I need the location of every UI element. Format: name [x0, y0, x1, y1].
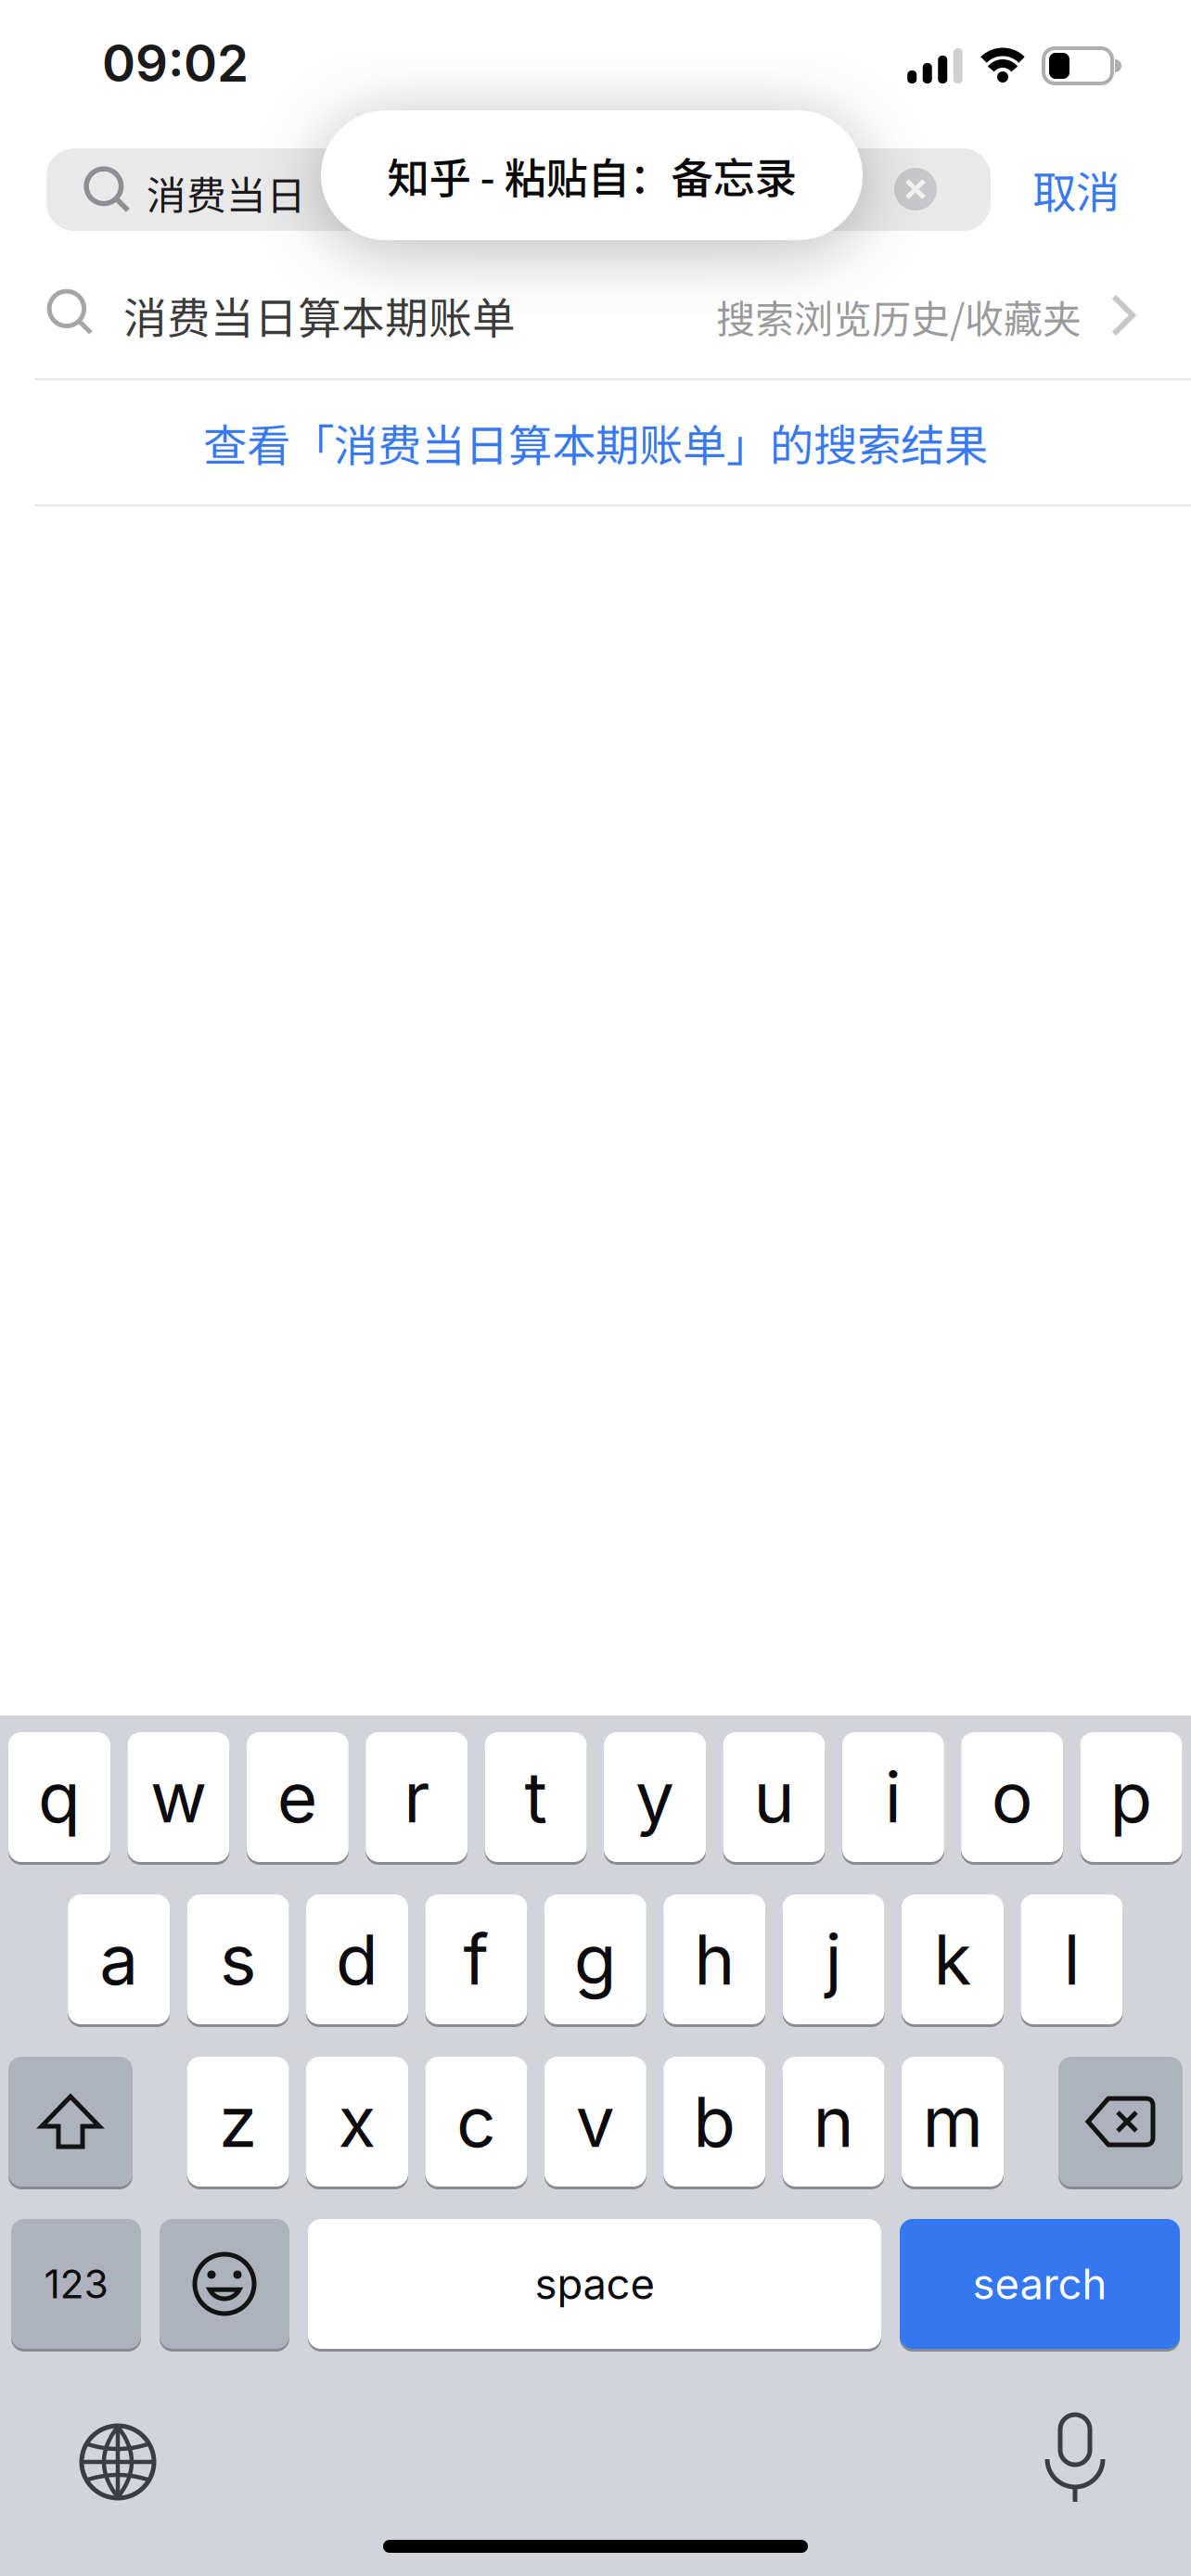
staticText: n	[813, 2080, 854, 2163]
staticText: 消费当日	[147, 164, 306, 221]
staticText: b	[693, 2080, 736, 2163]
staticText: u	[754, 1755, 794, 1839]
button[interactable]: s	[187, 1893, 289, 2026]
staticText: space	[535, 2258, 654, 2309]
staticText: 查看「消费当日算本期账单」的搜索结果	[203, 411, 988, 474]
staticText: search	[973, 2258, 1107, 2309]
button[interactable]: e	[247, 1730, 349, 1864]
button[interactable]: j	[782, 1893, 885, 2026]
button[interactable]: space	[308, 2217, 881, 2351]
staticText: l	[1063, 1917, 1080, 2001]
staticText: 知乎 - 粘贴自：备忘录	[387, 145, 796, 206]
button[interactable]: b	[663, 2055, 765, 2188]
button[interactable]: u	[723, 1730, 825, 1864]
button[interactable]: v	[544, 2055, 646, 2188]
button[interactable]: r	[366, 1730, 468, 1864]
staticText: w	[150, 1755, 207, 1839]
staticText: t	[525, 1755, 547, 1839]
staticText: p	[1110, 1755, 1153, 1839]
staticText: 09:02	[102, 32, 249, 94]
button[interactable]: Delete	[1058, 2055, 1183, 2188]
button[interactable]: Next keyboard	[82, 2426, 154, 2498]
button[interactable]: Shift	[8, 2055, 133, 2188]
button[interactable]: 查看「消费当日算本期账单」的搜索结果	[0, 380, 1191, 504]
button[interactable]: w	[127, 1730, 229, 1864]
button[interactable]: l	[1021, 1893, 1123, 2026]
button[interactable]: p	[1080, 1730, 1182, 1864]
staticText: f	[463, 1917, 489, 2001]
button[interactable]: 消费当日算本期账单	[0, 231, 1191, 379]
staticText: j	[825, 1917, 842, 2001]
staticText: i	[885, 1755, 901, 1839]
button[interactable]: t	[485, 1730, 587, 1864]
button[interactable]: x	[306, 2055, 408, 2188]
button[interactable]: search	[900, 2217, 1180, 2351]
button[interactable]: d	[306, 1893, 408, 2026]
button[interactable]: z	[187, 2055, 289, 2188]
button[interactable]: i	[842, 1730, 944, 1864]
button[interactable]: k	[902, 1893, 1004, 2026]
staticText: k	[934, 1917, 972, 2001]
button[interactable]: 123	[11, 2217, 141, 2351]
staticText: g	[574, 1917, 617, 2001]
button[interactable]: n	[782, 2055, 885, 2188]
staticText: s	[220, 1917, 256, 2001]
button[interactable]: 知乎 - 粘贴自：备忘录	[321, 110, 863, 240]
button[interactable]: q	[8, 1730, 110, 1864]
button[interactable]: o	[961, 1730, 1063, 1864]
staticText: z	[219, 2080, 257, 2163]
button[interactable]: f	[425, 1893, 527, 2026]
button[interactable]: Emoji	[160, 2217, 289, 2351]
button[interactable]: g	[544, 1893, 646, 2026]
button[interactable]: c	[425, 2055, 527, 2188]
staticText: r	[404, 1755, 430, 1839]
staticText: 搜索浏览历史/收藏夹	[716, 288, 1082, 345]
button[interactable]: 取消	[1032, 157, 1120, 221]
staticText: c	[456, 2080, 496, 2163]
button[interactable]: y	[604, 1730, 706, 1864]
staticText: a	[99, 1917, 138, 2001]
staticText: 123	[44, 2260, 108, 2308]
staticText: e	[277, 1755, 318, 1839]
staticText: m	[922, 2080, 983, 2163]
button[interactable]: Dictation	[1041, 2415, 1109, 2504]
staticText: 取消	[1032, 157, 1120, 221]
button[interactable]: h	[663, 1893, 765, 2026]
staticText: y	[635, 1755, 674, 1839]
staticText: o	[991, 1755, 1033, 1839]
button[interactable]: m	[902, 2055, 1004, 2188]
staticText: q	[38, 1755, 81, 1839]
staticText: 消费当日算本期账单	[123, 284, 516, 346]
staticText: h	[694, 1917, 735, 2001]
staticText: d	[336, 1917, 378, 2001]
button[interactable]: a	[68, 1893, 170, 2026]
button[interactable]: Clear text	[894, 168, 937, 210]
staticText: v	[576, 2080, 615, 2163]
staticText: x	[338, 2080, 376, 2163]
